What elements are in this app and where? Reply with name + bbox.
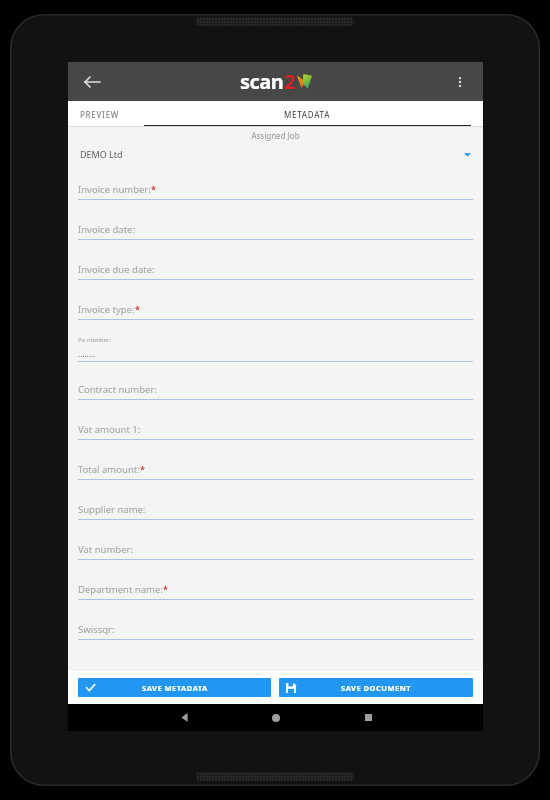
button[interactable]: Invoice due date:	[68, 249, 483, 289]
staticText: ........	[78, 348, 96, 359]
staticText: Department name:	[78, 583, 163, 596]
staticText: SAVE DOCUMENT	[341, 683, 412, 693]
button[interactable]: Supplier name:	[68, 489, 483, 529]
button[interactable]: Invoice date:	[68, 209, 483, 249]
staticText: *	[163, 583, 168, 595]
button[interactable]: Invoice number:	[68, 169, 483, 209]
button[interactable]: Contract number:	[68, 369, 483, 409]
button[interactable]: Department name:	[68, 569, 483, 609]
button[interactable]: Vat number:	[68, 529, 483, 569]
button[interactable]: SAVE DOCUMENT	[279, 678, 473, 697]
button[interactable]: Total amount:	[68, 449, 483, 489]
staticText: Invoice number:	[78, 183, 151, 196]
button[interactable]: Vat amount 1:	[68, 409, 483, 449]
button[interactable]: Invoice type:	[68, 289, 483, 329]
staticText: *	[140, 463, 145, 475]
button[interactable]: Po number:	[68, 329, 483, 369]
button[interactable]: Home	[230, 704, 322, 731]
staticText: Supplier name:	[78, 503, 146, 516]
staticText: Total amount:	[78, 463, 140, 476]
button[interactable]: DEMO Ltd	[68, 146, 483, 162]
staticText: Swissqr:	[78, 623, 115, 636]
staticText: Assigned Job	[68, 130, 483, 141]
staticText: Invoice date:	[78, 223, 136, 236]
staticText: *	[151, 183, 156, 195]
staticText: SAVE METADATA	[142, 683, 208, 693]
button[interactable]: SAVE METADATA	[78, 678, 271, 697]
staticText: Invoice due date:	[78, 263, 155, 276]
staticText: Contract number:	[78, 383, 157, 396]
staticText: 2	[284, 68, 296, 95]
button[interactable]: More options	[445, 67, 475, 97]
staticText: PREVIEW	[80, 109, 120, 120]
button[interactable]: Back	[138, 704, 230, 731]
staticText: METADATA	[284, 109, 331, 120]
staticText: Po number:	[78, 336, 112, 344]
staticText: Invoice type:	[78, 303, 135, 316]
staticText: DEMO Ltd	[80, 148, 123, 160]
staticText: scan	[240, 68, 284, 95]
button[interactable]: Back	[76, 66, 108, 98]
button[interactable]: Recent apps	[322, 704, 414, 731]
staticText: *	[135, 303, 140, 315]
button[interactable]: PREVIEW	[68, 101, 132, 127]
staticText: Vat number:	[78, 543, 134, 556]
button[interactable]: METADATA	[132, 101, 483, 127]
button[interactable]: Swissqr:	[68, 609, 483, 649]
staticText: Vat amount 1:	[78, 423, 141, 436]
